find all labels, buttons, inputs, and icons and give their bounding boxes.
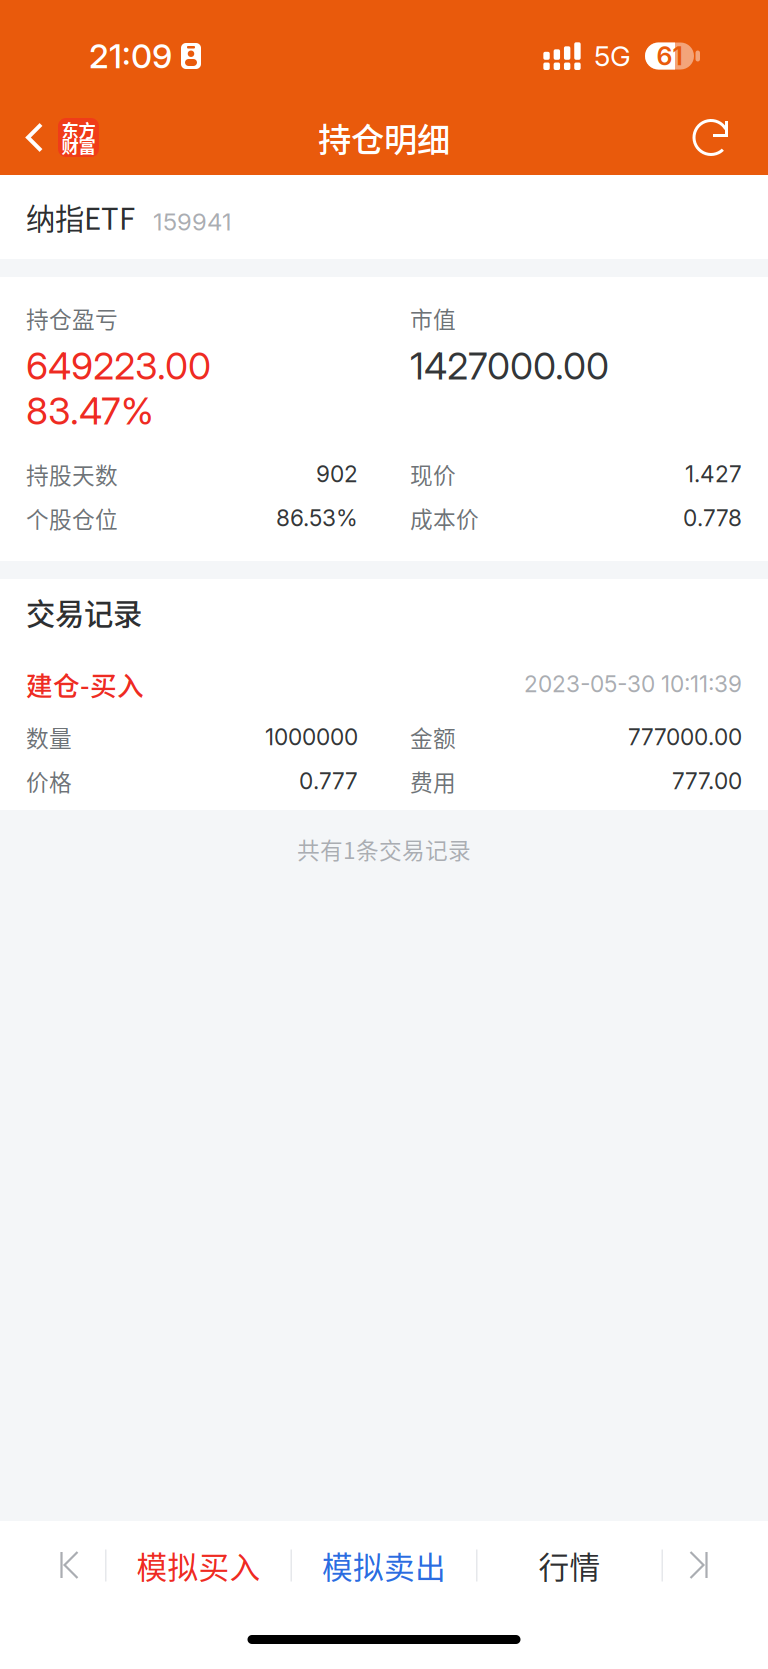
staticText: 模拟卖出 [322,1543,446,1588]
button[interactable]: Refresh [676,100,748,175]
staticText: 数量 [26,721,72,753]
staticText: 持仓盈亏 [26,302,118,334]
button[interactable]: 行情 [477,1521,661,1610]
staticText: 现价 [410,458,456,490]
staticText: 1.427 [685,460,742,488]
staticText: 持仓明细 [318,113,450,162]
button[interactable]: 建仓-买入 [0,645,768,810]
staticText: 777000.00 [628,723,742,751]
staticText: 建仓-买入 [26,665,144,703]
staticText: 86.53% [276,504,358,532]
staticText: 金额 [410,721,456,753]
staticText: 61 [656,41,682,71]
button[interactable]: 模拟买入 [106,1521,290,1610]
staticText: 83.47% [26,388,154,434]
staticText: 交易记录 [26,591,142,633]
staticText: 902 [316,460,358,488]
staticText: 持股天数 [26,458,118,490]
button[interactable]: Back to 东方财富 [0,100,140,175]
staticText: 价格 [26,765,72,797]
staticText: 649223.00 [26,343,211,389]
staticText: 0.778 [683,504,742,532]
staticText: 2023-05-30 10:11:39 [524,670,742,698]
staticText: 费用 [410,765,456,797]
staticText: 1427000.00 [410,343,609,389]
staticText: 5G [594,39,631,73]
button[interactable]: 模拟卖出 [292,1521,476,1610]
staticText: 纳指ETF [26,196,135,238]
button[interactable]: First record [35,1521,105,1610]
staticText: 模拟买入 [136,1543,260,1588]
staticText: 个股仓位 [26,502,118,534]
staticText: 行情 [538,1543,600,1588]
staticText: 东方 [61,117,95,142]
staticText: 0.777 [299,767,358,795]
staticText: 市值 [410,302,456,334]
staticText: 成本价 [410,502,479,534]
staticText: 共有1条交易记录 [297,833,471,865]
staticText: 21:09 [89,36,172,76]
staticText: 777.00 [672,767,742,795]
button[interactable]: Last record [663,1521,733,1610]
staticText: 1000000 [265,723,358,751]
staticText: 159941 [153,207,232,236]
staticText: 财富 [61,133,95,158]
